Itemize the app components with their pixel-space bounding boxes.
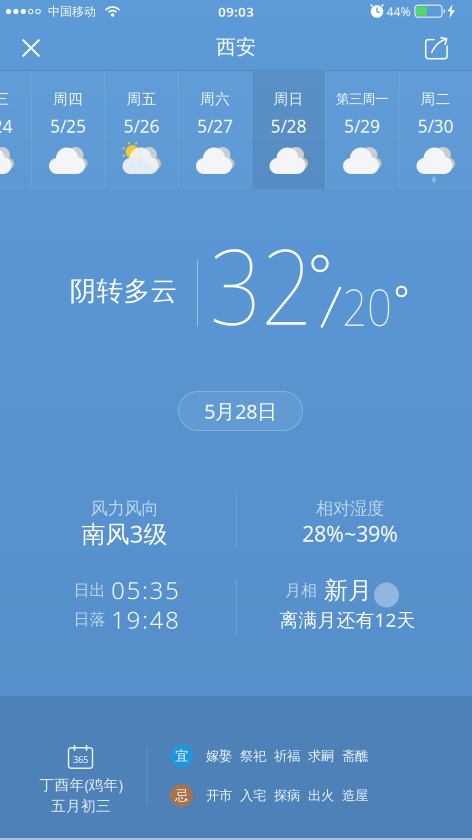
staticText: 周五	[126, 90, 156, 108]
staticText: 5/28	[270, 114, 306, 137]
staticText: 新月	[324, 576, 372, 605]
button[interactable]: 周日	[252, 71, 325, 189]
button[interactable]: 365	[0, 696, 472, 840]
button[interactable]: 周四	[31, 71, 104, 189]
staticText: 5/27	[197, 114, 233, 137]
staticText: 南风3级	[81, 518, 167, 549]
staticText: 忌	[175, 787, 188, 804]
staticText: 05:35	[111, 574, 179, 606]
button[interactable]: 周五	[105, 71, 178, 189]
button[interactable]: 周三	[0, 71, 31, 189]
staticText: 20	[339, 274, 395, 339]
staticText: 离满月还有12天	[279, 607, 415, 632]
staticText: 周三	[0, 90, 9, 108]
staticText: 宜	[175, 748, 188, 764]
staticText: 五月初三	[51, 797, 111, 815]
staticText: 相对湿度	[316, 498, 384, 519]
button[interactable]: 周六	[178, 71, 251, 189]
staticText: 5月28日	[204, 398, 277, 424]
staticText: 32	[202, 215, 320, 353]
staticText: 365	[73, 753, 88, 766]
staticText: 第三周一	[336, 91, 388, 107]
button[interactable]: Share	[420, 33, 452, 65]
staticText: 日落	[73, 610, 105, 629]
staticText: 5/29	[344, 114, 380, 137]
staticText: 中国移动	[48, 4, 96, 19]
staticText: 嫁娶 祭祀 祈福 求嗣 斋醮	[206, 748, 368, 764]
button[interactable]: 周二	[399, 71, 472, 189]
staticText: 周二	[420, 90, 450, 108]
staticText: 周六	[200, 90, 230, 108]
staticText: 44%	[386, 3, 410, 19]
staticText: 丁酉年(鸡年)	[39, 775, 122, 794]
staticText: 5/24	[0, 114, 12, 137]
staticText: 5/25	[50, 114, 86, 137]
staticText: 阴转多云	[69, 275, 177, 307]
staticText: 5/26	[123, 114, 159, 137]
staticText: 周四	[53, 90, 83, 108]
staticText: 19:48	[111, 604, 179, 635]
staticText: 周日	[273, 90, 303, 108]
button[interactable]: 第三周一	[325, 71, 398, 189]
staticText: 5/30	[417, 114, 453, 137]
staticText: 西安	[216, 35, 256, 59]
staticText: 月相	[285, 581, 317, 600]
staticText: 风力风向	[90, 498, 158, 519]
staticText: 09:03	[218, 3, 254, 20]
button[interactable]: Close	[11, 28, 51, 68]
staticText: 开市 入宅 探病 出火 造屋	[206, 787, 368, 804]
staticText: 日出	[73, 581, 105, 600]
staticText: 28%~39%	[302, 519, 398, 548]
